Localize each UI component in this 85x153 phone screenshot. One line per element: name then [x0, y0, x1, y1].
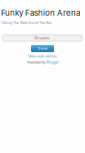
staticText: Home — [37, 46, 47, 51]
staticText: Funky Fashion Arena — [1, 8, 80, 18]
button[interactable]: Home — [31, 45, 54, 52]
staticText: Powered by — [26, 60, 45, 64]
staticText: No posts. — [34, 36, 50, 40]
staticText: Taking The Web Out of The Box — [1, 21, 52, 25]
staticText: Blogger — [46, 60, 58, 64]
button[interactable]: Blogger — [46, 60, 58, 64]
button[interactable]: View web version — [0, 54, 85, 58]
staticText: View web version — [28, 54, 57, 58]
